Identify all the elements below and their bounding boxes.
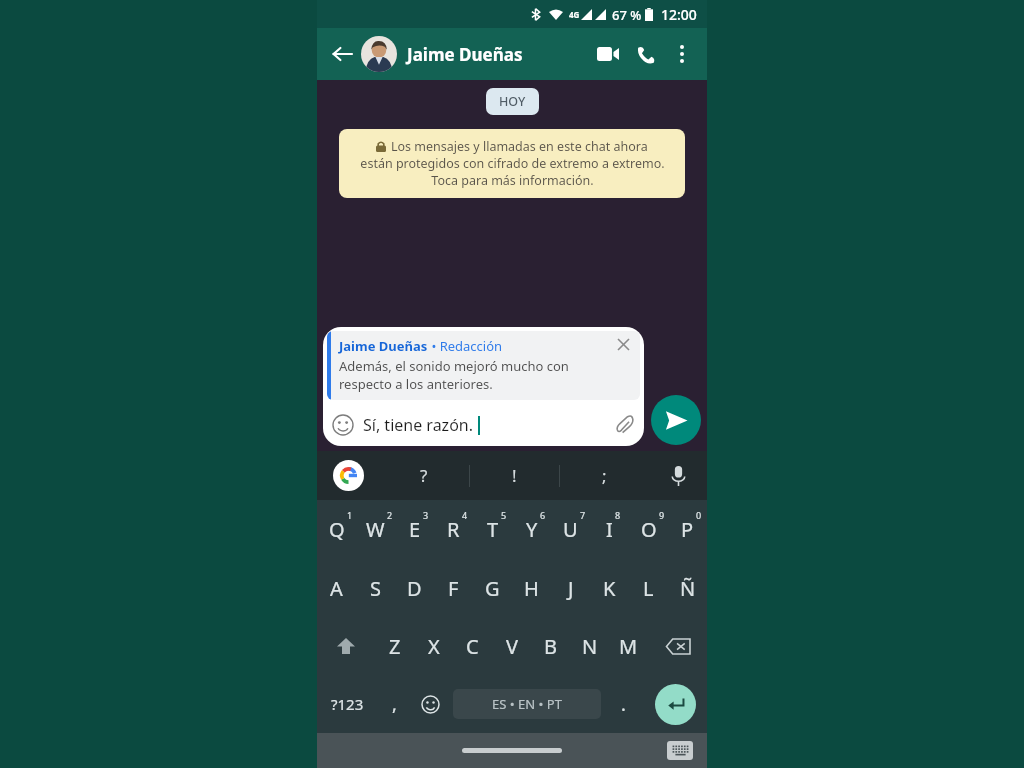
staticText: ?	[420, 464, 428, 487]
button[interactable]: N	[570, 617, 609, 675]
staticText: 6	[540, 509, 546, 521]
button[interactable]: Jaime Dueñas	[407, 43, 589, 66]
button[interactable]: Voice input	[649, 451, 707, 500]
staticText: J	[568, 575, 574, 602]
button[interactable]: Attach	[610, 411, 638, 439]
button[interactable]: U	[551, 500, 590, 559]
button[interactable]: Shift	[317, 617, 375, 675]
staticText: X	[428, 633, 440, 660]
button[interactable]: ,	[377, 675, 411, 733]
button[interactable]: A	[317, 559, 356, 617]
staticText: Además, el sonido mejoró mucho con	[339, 357, 569, 375]
button[interactable]: L	[629, 559, 668, 617]
button[interactable]	[361, 36, 397, 72]
button[interactable]: I	[590, 500, 629, 559]
staticText: Jaime Dueñas	[407, 43, 523, 66]
staticText: 1	[347, 509, 353, 521]
staticText: 2	[387, 509, 393, 521]
staticText: O	[641, 516, 657, 543]
button[interactable]: G	[473, 559, 512, 617]
button[interactable]	[462, 748, 562, 753]
button[interactable]: Call	[627, 35, 665, 73]
staticText: G	[485, 575, 500, 602]
staticText: 5	[501, 509, 507, 521]
staticText: 7	[580, 509, 586, 521]
button[interactable]: J	[551, 559, 590, 617]
staticText: ES • EN • PT	[492, 695, 562, 713]
button[interactable]: Send	[651, 395, 701, 445]
button[interactable]: Los mensajes y llamadas en este chat aho…	[339, 129, 685, 198]
button[interactable]: Hide keyboard	[667, 741, 693, 760]
button[interactable]: Jaime Dueñas	[327, 331, 640, 400]
button[interactable]: Emoji	[332, 414, 354, 436]
button[interactable]: S	[356, 559, 395, 617]
staticText: L	[643, 575, 654, 602]
staticText: !	[512, 464, 517, 487]
staticText: R	[447, 516, 460, 543]
button[interactable]: E	[395, 500, 434, 559]
staticText: C	[466, 633, 479, 660]
button[interactable]: Emoji	[323, 404, 644, 446]
staticText: 9	[659, 509, 665, 521]
staticText: Ñ	[680, 575, 696, 602]
staticText: respecto a los anteriores.	[339, 375, 493, 393]
button[interactable]: Ñ	[668, 559, 707, 617]
button[interactable]: Emoji keyboard	[411, 675, 450, 733]
button[interactable]: F	[434, 559, 473, 617]
button[interactable]: ?	[379, 451, 469, 500]
staticText: N	[582, 633, 598, 660]
staticText: .	[621, 692, 626, 717]
staticText: Jaime Dueñas	[339, 337, 428, 355]
button[interactable]: Video call	[589, 35, 627, 73]
staticText: HOY	[499, 93, 526, 110]
button[interactable]: B	[531, 617, 570, 675]
button[interactable]: O	[629, 500, 668, 559]
button[interactable]: T	[473, 500, 512, 559]
staticText: Los mensajes y llamadas en este chat aho…	[391, 138, 648, 155]
button[interactable]: !	[470, 451, 559, 500]
staticText: ?123	[331, 694, 364, 714]
button[interactable]: Back	[325, 37, 359, 71]
button[interactable]: Backspace	[648, 617, 707, 675]
button[interactable]: More options	[665, 37, 699, 71]
staticText: H	[524, 575, 539, 602]
button[interactable]: Close reply	[610, 331, 636, 357]
staticText: E	[409, 516, 421, 543]
button[interactable]: ;	[560, 451, 649, 500]
button[interactable]: ES • EN • PT	[453, 689, 601, 719]
staticText: 12:00	[661, 5, 697, 24]
staticText: V	[506, 633, 518, 660]
staticText: 0	[696, 509, 702, 521]
staticText: A	[330, 575, 343, 602]
staticText: están protegidos con cifrado de extremo …	[360, 155, 665, 172]
staticText: M	[619, 633, 638, 660]
button[interactable]: Enter	[655, 684, 696, 725]
button[interactable]: ?123	[317, 675, 377, 733]
button[interactable]: H	[512, 559, 551, 617]
button[interactable]: HOY	[486, 88, 539, 115]
button[interactable]: .	[604, 675, 643, 733]
staticText: ,	[392, 692, 397, 717]
staticText: ;	[602, 464, 607, 487]
staticText: 3	[423, 509, 429, 521]
button[interactable]: X	[414, 617, 453, 675]
button[interactable]: W	[356, 500, 395, 559]
staticText: D	[407, 575, 422, 602]
button[interactable]: Y	[512, 500, 551, 559]
button[interactable]: M	[609, 617, 648, 675]
staticText: W	[366, 516, 385, 543]
button[interactable]: Z	[375, 617, 414, 675]
staticText: B	[544, 633, 557, 660]
staticText: Sí, tiene razón.	[363, 414, 474, 436]
button[interactable]: P	[668, 500, 707, 559]
button[interactable]: D	[395, 559, 434, 617]
button[interactable]: Q	[317, 500, 356, 559]
button[interactable]: V	[492, 617, 531, 675]
button[interactable]: K	[590, 559, 629, 617]
staticText: Z	[389, 633, 401, 660]
button[interactable]: R	[434, 500, 473, 559]
button[interactable]: C	[453, 617, 492, 675]
staticText: K	[603, 575, 616, 602]
staticText: U	[563, 516, 578, 543]
button[interactable]: Google	[333, 460, 364, 491]
